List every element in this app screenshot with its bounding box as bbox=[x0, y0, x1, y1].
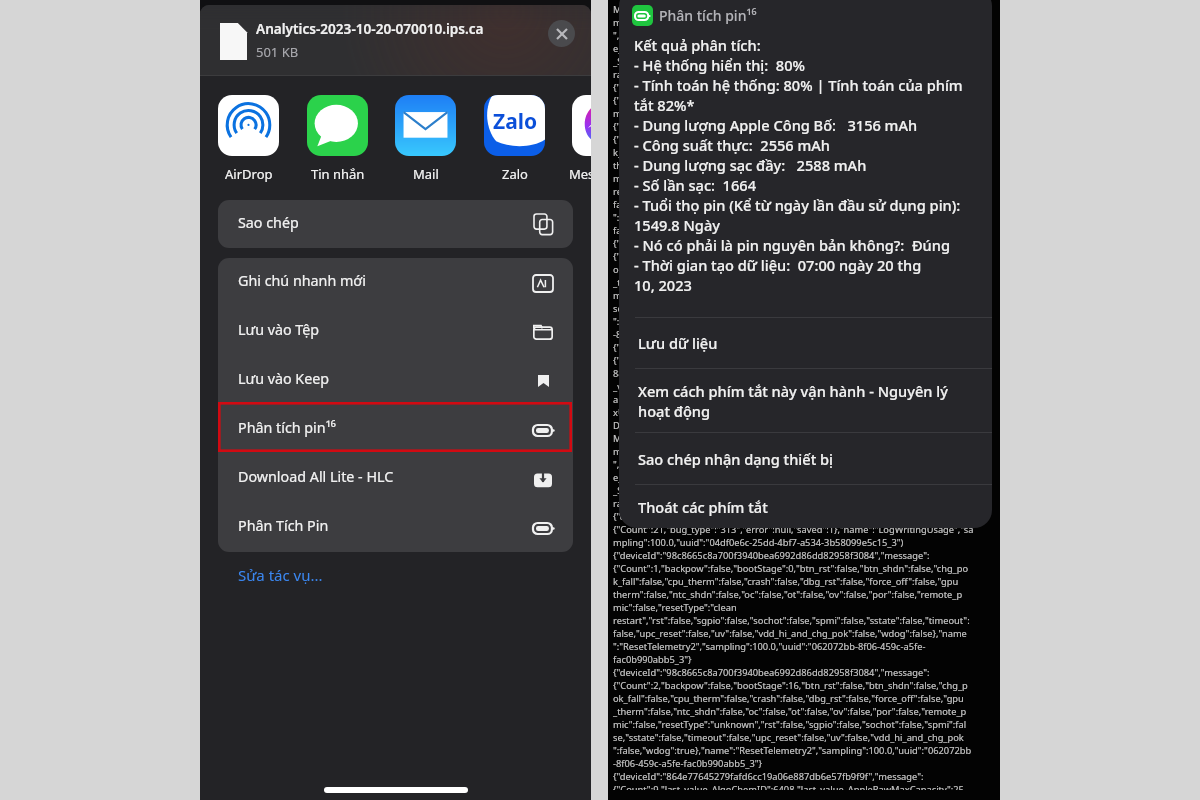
staticText: AirDrop bbox=[225, 165, 273, 182]
staticText: {"deviceId":"98c8665c8a700f3940bea6992d8… bbox=[613, 510, 930, 523]
button[interactable]: Phân tích pin¹⁶ bbox=[218, 405, 573, 454]
staticText: 501 KB bbox=[256, 43, 299, 61]
staticText: ":false,"wdog":true},"name":"ResetTeleme… bbox=[613, 744, 972, 757]
staticText: false,"upc_reset":false,"uv":false,"vdd_… bbox=[613, 627, 967, 640]
staticText: MaximumFCC":2588,"last_value_MaximumPass… bbox=[613, 432, 961, 445]
button[interactable]: Ghi chú nhanh mới bbox=[218, 258, 573, 307]
staticText: Ghi chú nhanh mới bbox=[238, 271, 366, 290]
button[interactable]: Sao chép nhận dạng thiết bị bbox=[619, 433, 992, 484]
button[interactable]: Download All Lite - HLC bbox=[218, 454, 573, 503]
staticText: Mail bbox=[413, 165, 439, 182]
staticText: se,"sstate":false,"timeout":false,"upc_r… bbox=[613, 302, 964, 315]
staticText: rature":3220,"last_value_Voltage":4352,"… bbox=[613, 497, 913, 510]
button[interactable]: Sửa tác vụ... bbox=[238, 565, 323, 585]
staticText: 10, 2023 bbox=[634, 275, 692, 295]
staticText: Messenger bbox=[569, 165, 591, 182]
staticText: DailyMinSoc":22,"last_value_Flags":67,"l… bbox=[613, 419, 960, 432]
button[interactable]: Lưu vào Keep bbox=[218, 356, 573, 405]
staticText: _therm":false,"ntc_shdn":false,"oc":fals… bbox=[613, 705, 967, 718]
staticText: xUpdate":1663,"last_value_DOD0":4316,"la… bbox=[613, 406, 969, 419]
staticText: mic":false,"resetType":"unknown","rst":f… bbox=[613, 718, 967, 731]
staticText: Xem cách phím tắt này vận hành - Nguyên … bbox=[638, 381, 948, 401]
staticText: {"Count":9,"last_value_AlgoChemID":6408,… bbox=[613, 783, 964, 790]
staticText: Zalo bbox=[502, 165, 528, 182]
staticText: mic":false,"resetType":"clean bbox=[613, 172, 737, 185]
staticText: {"deviceId":"98c8665c8a700f3940bea6992d8… bbox=[613, 666, 930, 679]
staticText: {"Count":2,"backpow":false,"bootStage":1… bbox=[613, 250, 968, 263]
staticText: {"Count":21,"bug_type":"313","error":nul… bbox=[613, 94, 974, 107]
staticText: ","last_value_NominalChargeCapacity":258… bbox=[613, 29, 960, 42]
button[interactable]: Lưu vào Tệp bbox=[218, 307, 573, 356]
button[interactable]: Mail bbox=[395, 95, 456, 182]
staticText: 1549.8 Ngày bbox=[634, 215, 720, 235]
staticText: e_ResScale":316,"last_value_ResistanceSc… bbox=[613, 42, 949, 55]
staticText: tắt 82%* bbox=[634, 95, 695, 115]
staticText: mumFCC":2556,"last_value_MinimumQmax":25… bbox=[613, 16, 964, 29]
staticText: ok_fall":false,"cpu_therm":false,"crash"… bbox=[613, 263, 964, 276]
staticText: mpling":100.0,"uuid":"04df0e6c-25dd-4bf7… bbox=[613, 107, 904, 120]
staticText: ":"ResetTelemetry2","sampling":100.0,"uu… bbox=[613, 640, 926, 653]
staticText: alWeightedRa":136,"last_value_CycleCount… bbox=[613, 393, 968, 406]
button[interactable]: Phân Tích Pin bbox=[218, 503, 573, 552]
staticText: Phân Tích Pin bbox=[238, 516, 329, 535]
button[interactable]: Xem cách phím tắt này vận hành - Nguyên … bbox=[619, 369, 992, 432]
staticText: 88,"last_value_AverageTemperature":32,"l… bbox=[613, 367, 972, 380]
staticText: _therm":false,"ntc_shdn":false,"oc":fals… bbox=[613, 276, 967, 289]
staticText: Lưu vào Tệp bbox=[238, 320, 320, 339]
staticText: MaximumFCC":2588,"last_value_MaximumPass… bbox=[613, 3, 961, 16]
staticText: -8f06-459c-a5fe-fac0b990abb5_3"} bbox=[613, 757, 763, 770]
button[interactable]: Zalo bbox=[484, 95, 545, 182]
staticText: - Thời gian tạo dữ liệu: 07:00 ngày 20 t… bbox=[634, 255, 922, 275]
staticText: ok_fall":false,"cpu_therm":false,"crash"… bbox=[613, 692, 964, 705]
staticText: ":"ResetTelemetry2","sampling":100.0,"uu… bbox=[613, 211, 926, 224]
staticText: Zalo bbox=[493, 107, 538, 136]
staticText: {"deviceId":"864e77645279fafd6cc19a06e88… bbox=[613, 341, 924, 354]
staticText: restart","rst":false,"sgpio":false,"soch… bbox=[613, 185, 970, 198]
staticText: therm":false,"ntc_shdn":false,"oc":false… bbox=[613, 588, 963, 601]
staticText: {"Count":2,"backpow":false,"bootStage":1… bbox=[613, 679, 968, 692]
button[interactable]: Thoát các phím tắt bbox=[619, 485, 992, 528]
staticText: mumFCC":2556,"last_value_MinimumQmax":25… bbox=[613, 445, 964, 458]
staticText: {"deviceId":"864e77645279fafd6cc19a06e88… bbox=[613, 770, 924, 783]
staticText: ","last_value_NominalChargeCapacity":258… bbox=[613, 458, 960, 471]
button[interactable]: Lưu dữ liệu bbox=[619, 318, 992, 368]
staticText: therm":false,"ntc_shdn":false,"oc":false… bbox=[613, 159, 963, 172]
staticText: mic":false,"resetType":"clean bbox=[613, 601, 737, 614]
button[interactable]: Sao chép bbox=[218, 200, 573, 248]
staticText: - Công suất thực: 2556 mAh bbox=[634, 135, 830, 155]
staticText: Kết quả phân tích: bbox=[634, 35, 761, 55]
staticText: ":false,"wdog":true},"name":"ResetTeleme… bbox=[613, 315, 972, 328]
staticText: {"Count":1,"backpow":false,"bootStage":0… bbox=[613, 562, 969, 575]
staticText: {"Count":1,"backpow":false,"bootStage":0… bbox=[613, 133, 969, 146]
staticText: se,"sstate":false,"timeout":false,"upc_r… bbox=[613, 731, 964, 744]
staticText: Phân tích pin¹⁶ bbox=[659, 6, 757, 25]
staticText: - Dung lượng sạc đầy: 2588 mAh bbox=[634, 155, 867, 175]
staticText: fac0b990abb5_3"} bbox=[613, 224, 692, 237]
staticText: Lưu vào Keep bbox=[238, 369, 330, 388]
staticText: k_fall":false,"cpu_therm":false,"crash":… bbox=[613, 575, 959, 588]
staticText: e_ResScale":316,"last_value_ResistanceSc… bbox=[613, 471, 949, 484]
button[interactable]: AirDrop bbox=[218, 95, 279, 182]
staticText: DailyMinSoc":22,"last_value_Flags":67,"l… bbox=[613, 0, 960, 3]
staticText: _value_BatterySerialChang_______________… bbox=[613, 380, 917, 393]
staticText: {"deviceId":"98c8665c8a700f3940bea6992d8… bbox=[613, 549, 930, 562]
staticText: Download All Lite - HLC bbox=[238, 467, 394, 486]
staticText: - Hệ thống hiển thị: 80% bbox=[634, 55, 805, 75]
staticText: _SignedCurrentAccum":5284,"last_value_St… bbox=[613, 484, 960, 497]
staticText: - Nó có phải là pin nguyên bản không?: Đ… bbox=[634, 235, 950, 255]
staticText: {"Count":9,"last_value_AlgoChemID":6408,… bbox=[613, 354, 964, 367]
button[interactable]: Tin nhắn bbox=[307, 95, 368, 182]
staticText: Sao chép nhận dạng thiết bị bbox=[638, 449, 834, 469]
staticText: {"deviceId":"98c8665c8a700f3940bea6992d8… bbox=[613, 81, 930, 94]
button[interactable]: Close bbox=[548, 20, 575, 47]
staticText: Sửa tác vụ... bbox=[238, 565, 323, 585]
staticText: Thoát các phím tắt bbox=[638, 497, 768, 517]
staticText: Sao chép bbox=[238, 213, 299, 232]
staticText: fac0b990abb5_3"} bbox=[613, 653, 692, 666]
staticText: - Tuổi thọ pin (Kể từ ngày lần đầu sử dụ… bbox=[634, 195, 961, 215]
staticText: - Dung lượng Apple Công Bố: 3156 mAh bbox=[634, 115, 918, 135]
staticText: k_fall":false,"cpu_therm":false,"crash":… bbox=[613, 146, 959, 159]
button[interactable]: Messenger bbox=[572, 95, 591, 182]
staticText: Phân tích pin¹⁶ bbox=[238, 418, 336, 437]
staticText: rature":3220,"last_value_Voltage":4352,"… bbox=[613, 68, 913, 81]
